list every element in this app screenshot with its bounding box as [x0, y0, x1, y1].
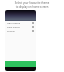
button[interactable]: Light theme: [5, 21, 36, 25]
staticText: Dark theme: [7, 26, 20, 29]
button[interactable]: Dark theme: [5, 25, 36, 29]
staticText: System: [7, 30, 15, 33]
staticText: Select your favourite theme to display o…: [1, 1, 63, 9]
staticText: Light theme: [7, 22, 21, 25]
button[interactable]: System: [5, 29, 36, 33]
